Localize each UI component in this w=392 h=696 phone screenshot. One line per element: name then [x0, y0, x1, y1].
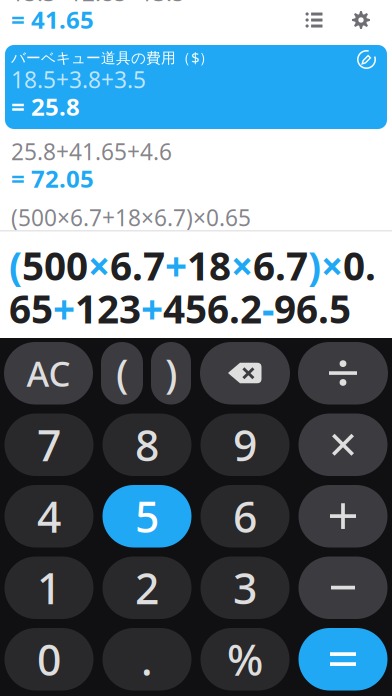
staticText: 2 [135, 559, 159, 616]
staticText: バーベキュー道具の費用（$） [11, 48, 214, 67]
button[interactable]: Multiply [298, 413, 387, 476]
button[interactable]: 0 [4, 628, 93, 690]
staticText: 25.8+41.65+4.6 [11, 136, 172, 166]
button[interactable]: Delete [200, 342, 290, 404]
staticText: 9 [233, 416, 257, 473]
button[interactable]: ) [151, 342, 191, 404]
staticText: 4 [37, 488, 61, 545]
button[interactable]: % [200, 628, 289, 690]
button[interactable]: History [299, 5, 329, 35]
staticText: 6 [233, 488, 257, 545]
staticText: 7 [37, 416, 61, 473]
staticText: = 25.8 [11, 91, 80, 122]
button[interactable]: 7 [4, 413, 93, 476]
staticText: 18.5+3.8+3.5 [11, 64, 146, 94]
staticText: 3 [233, 559, 257, 616]
staticText: % [227, 631, 263, 688]
staticText: = 72.05 [11, 163, 94, 194]
button[interactable]: 5 [102, 485, 191, 547]
staticText: (500×6.7+18×6.7)×0.65 [11, 202, 251, 232]
staticText: 15.3+12.85+13.5 [11, 0, 185, 7]
button[interactable]: . [102, 628, 191, 690]
staticText: 8 [135, 416, 159, 473]
button[interactable]: AC [4, 342, 93, 404]
staticText: 1 [37, 559, 61, 616]
staticText: (500×6.7+18×6.7)×0. [9, 240, 376, 291]
button[interactable]: 25.8+41.65+4.6 [0, 138, 392, 186]
button[interactable]: ( [101, 342, 143, 404]
button[interactable]: バーベキュー道具の費用（$） [5, 45, 387, 129]
button[interactable]: Settings [346, 5, 376, 35]
button[interactable]: 1 [4, 556, 93, 619]
button[interactable]: 15.3+12.85+13.5 [0, 0, 392, 27]
button[interactable]: Minus [298, 556, 387, 619]
button[interactable]: 3 [200, 556, 289, 619]
button[interactable]: 6 [200, 485, 289, 547]
button[interactable]: Plus [298, 485, 387, 547]
staticText: 5 [135, 488, 159, 545]
staticText: AC [26, 350, 70, 396]
button[interactable]: 4 [4, 485, 93, 547]
staticText: = 41.65 [11, 4, 94, 35]
staticText: . [141, 631, 153, 688]
button[interactable]: Equals [298, 628, 387, 690]
staticText: ( [116, 347, 128, 400]
button[interactable]: 9 [200, 413, 289, 476]
staticText: 0 [37, 631, 61, 688]
staticText: ) [165, 347, 177, 400]
button[interactable]: 2 [102, 556, 191, 619]
button[interactable]: 8 [102, 413, 191, 476]
button[interactable]: Divide [298, 342, 388, 404]
staticText: 65+123+456.2-96.5 [9, 283, 351, 334]
